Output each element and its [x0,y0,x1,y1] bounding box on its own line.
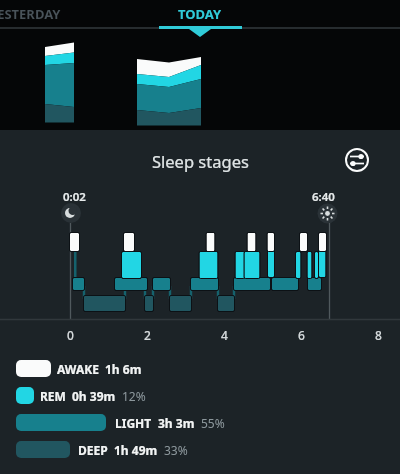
staticText: DEEP [78,442,108,458]
staticText: 55% [201,415,225,431]
staticText: 12% [122,388,146,404]
staticText: AWAKE [57,361,99,377]
staticText: TODAY [178,5,222,23]
staticText: 2 [144,327,151,343]
staticText: REM [40,388,66,404]
staticText: 4 [221,327,228,343]
staticText: YESTERDAY [0,5,61,23]
button[interactable]: YESTERDAY [0,0,85,27]
button[interactable] [342,145,372,175]
staticText: 6 [298,327,305,343]
staticText: 1h 6m [105,361,142,377]
staticText: 6:40 [312,189,335,205]
staticText: 0 [67,327,74,343]
button[interactable]: TODAY [140,0,260,27]
staticText: 1h 49m [114,442,158,458]
staticText: 8 [375,327,382,343]
staticText: 33% [164,442,188,458]
staticText: 0:02 [63,189,86,205]
staticText: Sleep stages [152,150,249,172]
staticText: 0h 39m [72,388,116,404]
staticText: 3h 3m [158,415,195,431]
staticText: LIGHT [115,415,152,431]
